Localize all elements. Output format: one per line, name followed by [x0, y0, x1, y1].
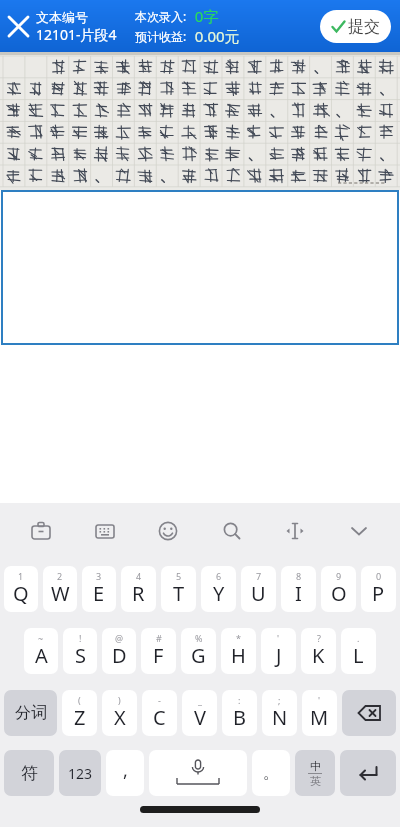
button[interactable]: ' [261, 628, 296, 674]
staticText: 。 [263, 763, 279, 783]
button[interactable]: ' [302, 690, 337, 736]
staticText: # [156, 632, 162, 644]
staticText: 分词 [15, 703, 47, 723]
button[interactable]: 2 [43, 566, 77, 612]
button[interactable] [340, 750, 396, 796]
button[interactable] [146, 509, 190, 553]
staticText: ? [317, 632, 321, 644]
staticText: 6 [216, 570, 222, 582]
staticText: W [51, 580, 70, 607]
staticText: ~ [38, 632, 44, 644]
staticText: ; [278, 694, 281, 706]
staticText: B [233, 704, 246, 731]
button[interactable]: % [181, 628, 216, 674]
staticText: O [331, 580, 347, 607]
button[interactable]: @ [102, 628, 136, 674]
staticText: ' [277, 632, 280, 644]
staticText: - [158, 694, 161, 706]
staticText: Z [74, 704, 86, 731]
button[interactable]: - [142, 690, 177, 736]
staticText: 1 [18, 570, 24, 582]
button[interactable]: 3 [82, 566, 116, 612]
staticText: ) [118, 694, 121, 706]
button[interactable]: 8 [281, 566, 316, 612]
staticText: F [153, 642, 164, 669]
button[interactable] [0, 0, 36, 52]
button[interactable] [210, 509, 254, 553]
staticText: 英 [310, 774, 321, 788]
staticText: : [238, 694, 241, 706]
button[interactable]: ( [62, 690, 97, 736]
button[interactable]: 提交 [320, 10, 391, 43]
button[interactable]: 1 [4, 566, 38, 612]
staticText: U [251, 580, 266, 607]
staticText: 12101-片段4 [36, 25, 117, 44]
button[interactable]: . [341, 628, 376, 674]
staticText: R [132, 580, 145, 607]
staticText: % [195, 632, 203, 644]
button[interactable] [149, 750, 247, 796]
staticText: N [272, 704, 288, 731]
staticText: _ [198, 694, 202, 706]
button[interactable]: , [106, 750, 144, 796]
button[interactable]: 分词 [4, 690, 57, 736]
staticText: A [35, 642, 48, 669]
staticText: , [123, 758, 128, 783]
button[interactable]: 123 [59, 750, 101, 796]
staticText: 3 [96, 570, 102, 582]
staticText: I [295, 580, 302, 607]
staticText: Q [13, 580, 29, 607]
button[interactable]: _ [182, 690, 217, 736]
button[interactable] [19, 509, 63, 553]
button[interactable]: 6 [201, 566, 236, 612]
staticText: V [194, 704, 206, 731]
staticText: 7 [256, 570, 262, 582]
staticText: 2 [57, 570, 63, 582]
staticText: M [310, 704, 329, 731]
staticText: 0 [376, 570, 382, 582]
staticText: 4 [136, 570, 142, 582]
button[interactable]: 7 [241, 566, 276, 612]
staticText: 123 [68, 764, 93, 783]
staticText: X [114, 704, 126, 731]
staticText: E [93, 580, 105, 607]
button[interactable] [337, 509, 381, 553]
staticText: @ [115, 632, 124, 644]
staticText: ' [318, 694, 321, 706]
button[interactable]: : [222, 690, 257, 736]
button[interactable]: ? [301, 628, 336, 674]
button[interactable]: ~ [24, 628, 58, 674]
button[interactable]: 9 [321, 566, 356, 612]
staticText: 0字 [187, 6, 219, 26]
staticText: K [312, 642, 325, 669]
button[interactable] [273, 509, 317, 553]
staticText: C [153, 704, 166, 731]
staticText: 符 [21, 763, 38, 784]
staticText: 0.00元 [187, 26, 240, 46]
staticText: * [236, 632, 241, 644]
button[interactable]: 中 [295, 750, 335, 796]
button[interactable]: ! [63, 628, 97, 674]
staticText: G [191, 642, 206, 669]
button[interactable]: * [221, 628, 256, 674]
button[interactable]: 符 [4, 750, 54, 796]
staticText: L [353, 642, 364, 669]
button[interactable]: 4 [121, 566, 156, 612]
button[interactable] [83, 509, 127, 553]
staticText: T [173, 580, 185, 607]
staticText: 中 [310, 759, 321, 773]
button[interactable] [1, 190, 399, 345]
button[interactable]: 。 [252, 750, 290, 796]
staticText: S [75, 642, 86, 669]
button[interactable]: 5 [161, 566, 196, 612]
staticText: H [231, 642, 246, 669]
button[interactable]: 0 [361, 566, 396, 612]
staticText: . [357, 632, 360, 644]
staticText: 9 [336, 570, 342, 582]
button[interactable]: ) [102, 690, 137, 736]
button[interactable] [342, 690, 396, 736]
staticText: J [276, 642, 282, 669]
button[interactable]: ; [262, 690, 297, 736]
staticText: 本次录入: [135, 8, 187, 24]
button[interactable]: # [141, 628, 176, 674]
